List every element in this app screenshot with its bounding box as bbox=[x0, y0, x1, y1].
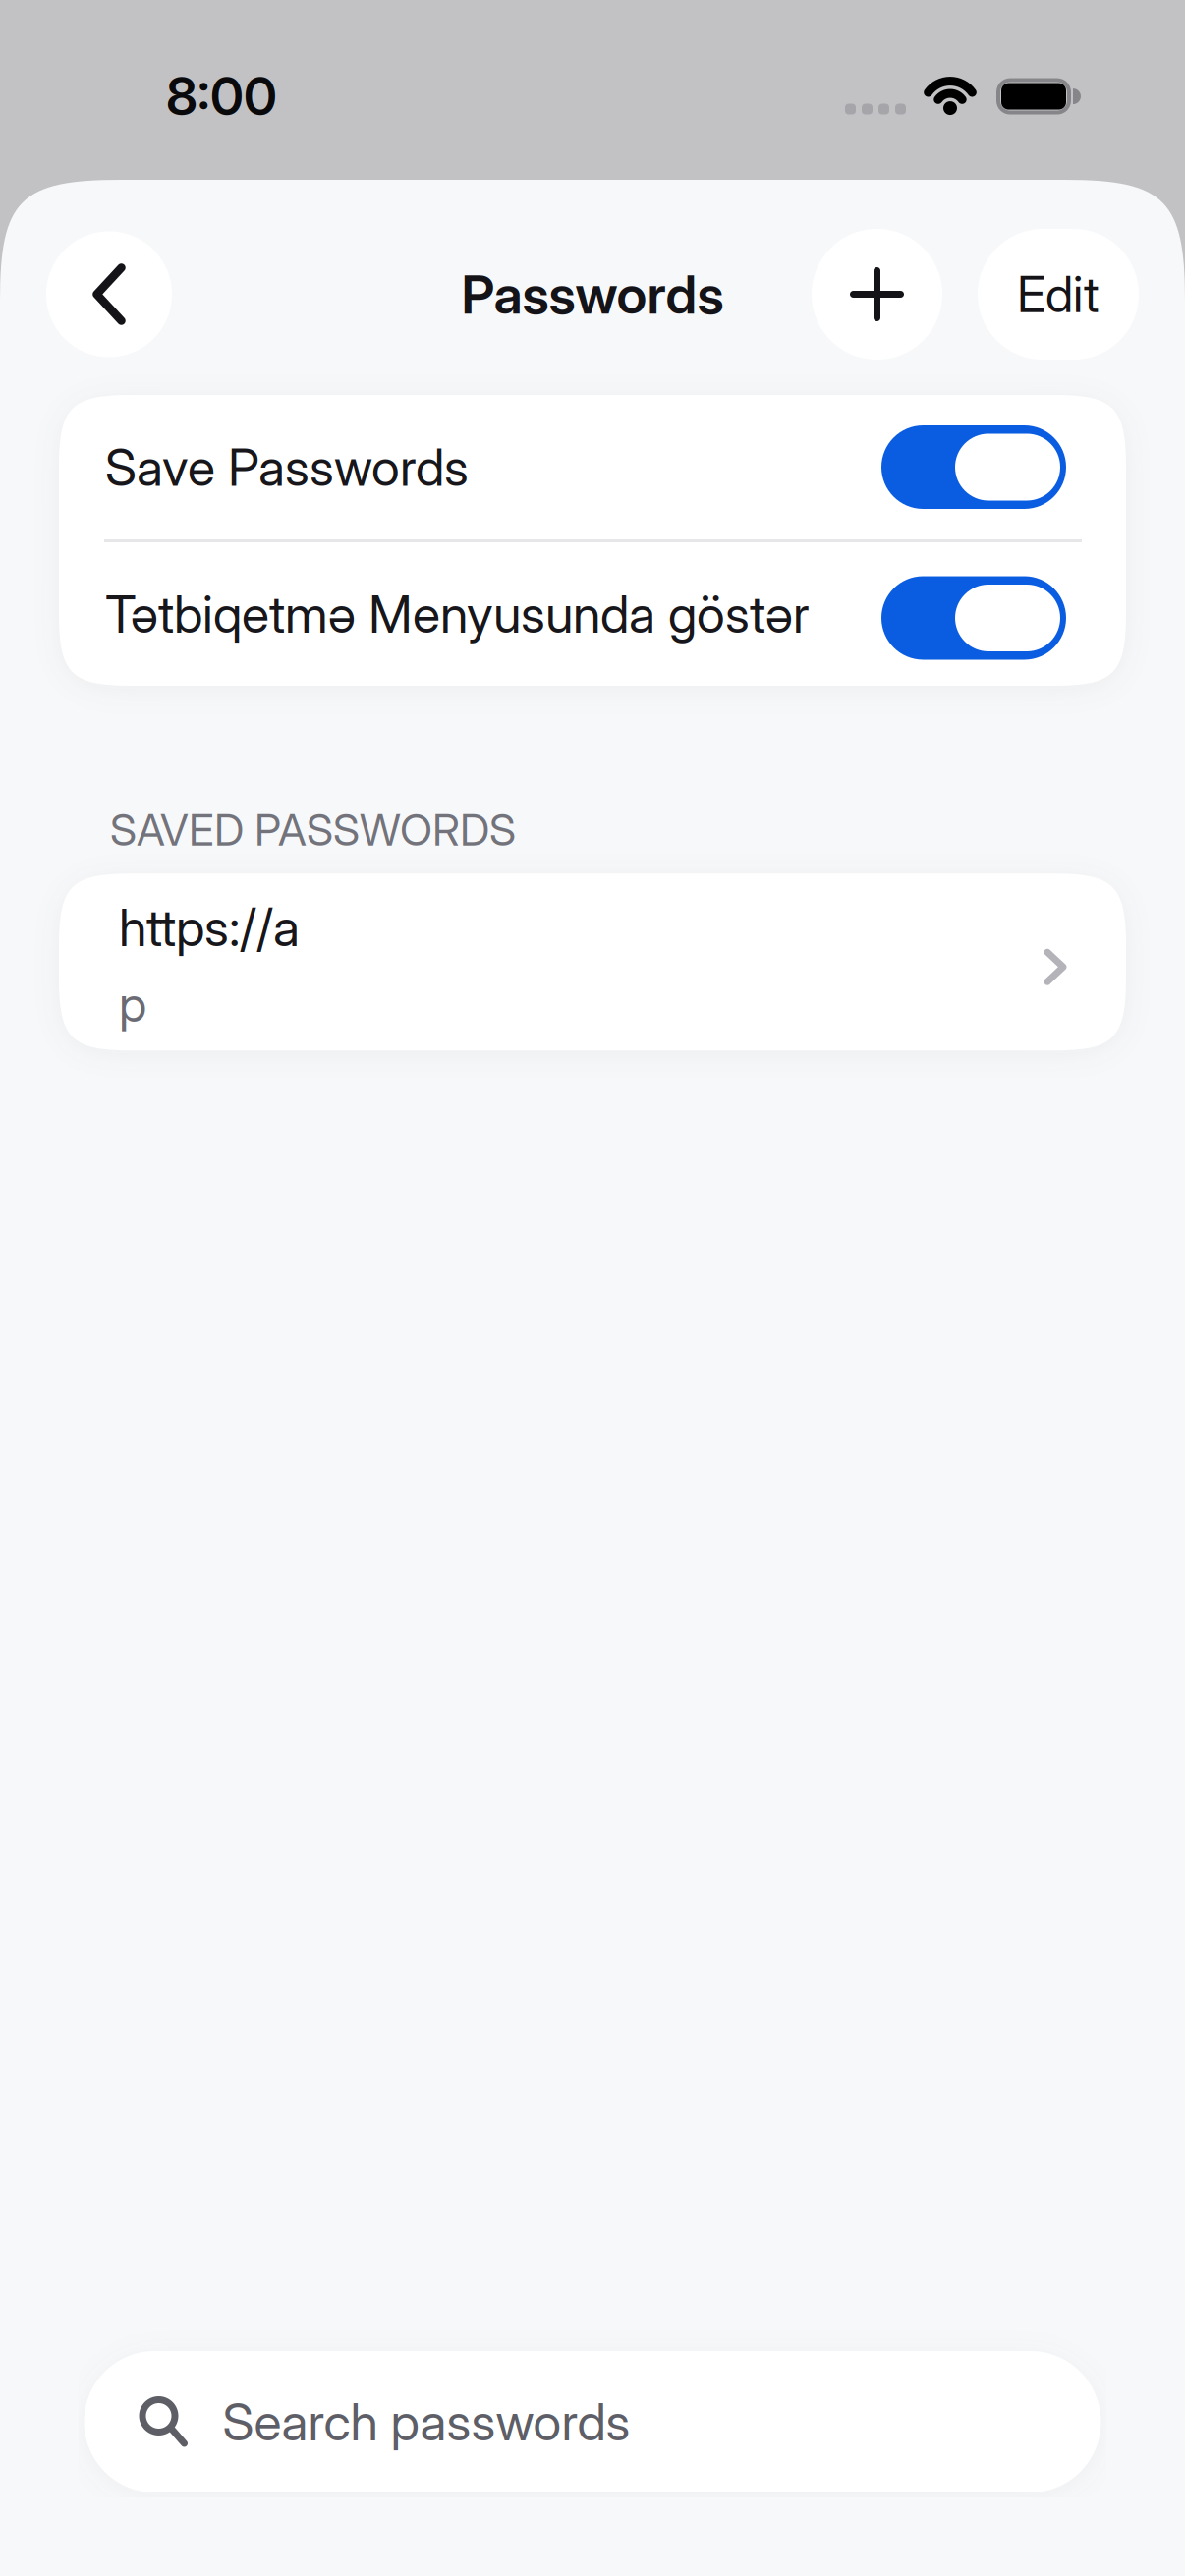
button[interactable]: Search passwords bbox=[84, 2351, 1101, 2492]
staticText: SAVED PASSWORDS bbox=[110, 804, 516, 856]
button[interactable]: Save Passwords bbox=[59, 395, 1126, 539]
button[interactable]: https://a bbox=[0, 874, 1185, 1050]
staticText: 8:00 bbox=[166, 65, 277, 128]
staticText: Tətbiqetmə Menyusunda göstər bbox=[105, 583, 810, 645]
button[interactable]: Add password bbox=[812, 229, 942, 360]
staticText: p bbox=[119, 974, 146, 1033]
staticText: Search passwords bbox=[223, 2391, 630, 2453]
staticText: Save Passwords bbox=[105, 436, 469, 498]
button[interactable]: Back bbox=[46, 231, 172, 357]
staticText: Edit bbox=[1017, 265, 1100, 324]
staticText: Passwords bbox=[461, 262, 724, 326]
staticText: https://a bbox=[119, 896, 300, 958]
button[interactable]: Edit bbox=[978, 229, 1139, 360]
button[interactable]: Tətbiqetmə Menyusunda göstər bbox=[59, 542, 1126, 686]
